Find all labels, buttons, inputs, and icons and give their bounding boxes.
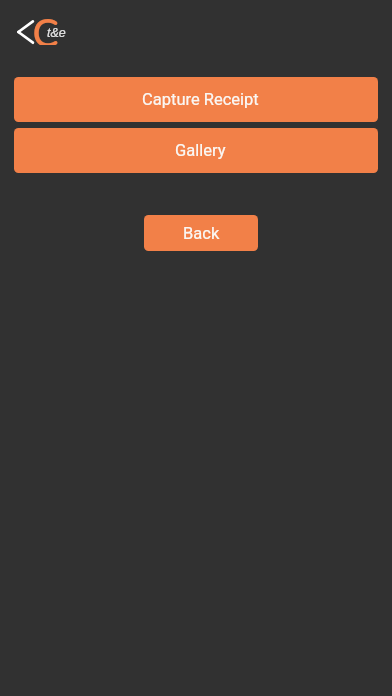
- staticText: Gallery: [175, 141, 226, 160]
- staticText: t&e: [47, 26, 66, 40]
- button[interactable]: Gallery: [14, 128, 378, 173]
- staticText: Back: [183, 224, 220, 243]
- staticText: C: [32, 7, 60, 45]
- staticText: Capture Receipt: [142, 90, 259, 109]
- button[interactable]: Back: [14, 12, 72, 50]
- button[interactable]: Back: [144, 215, 258, 251]
- button[interactable]: Capture Receipt: [14, 77, 378, 122]
